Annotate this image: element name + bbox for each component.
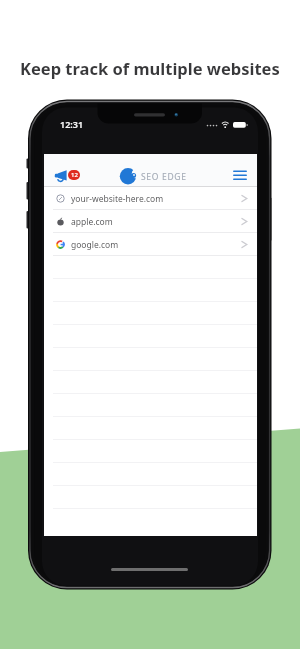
button[interactable]: apple.com xyxy=(44,210,257,233)
button[interactable]: your-website-here.com xyxy=(44,187,257,210)
button[interactable] xyxy=(228,166,252,184)
staticText: google.com xyxy=(71,239,119,251)
button[interactable]: google.com xyxy=(44,233,257,256)
staticText: 12 xyxy=(71,171,78,179)
staticText: your-website-here.com xyxy=(71,193,164,205)
staticText: apple.com xyxy=(71,216,113,228)
button[interactable]: 12 xyxy=(52,164,82,184)
staticText: SEO EDGE xyxy=(141,171,187,183)
staticText: 12:31 xyxy=(60,118,84,130)
staticText: Keep track of multiple websites xyxy=(20,57,280,79)
